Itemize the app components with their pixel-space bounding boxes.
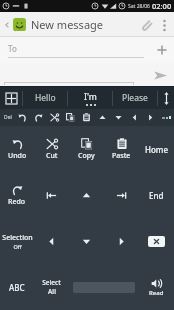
button[interactable]: Undo <box>15 109 30 126</box>
button[interactable]: Undo <box>0 126 34 172</box>
button[interactable]: Resize keyboard <box>158 87 174 109</box>
button[interactable]: End <box>139 172 174 218</box>
button[interactable]: I'm <box>68 87 112 109</box>
button[interactable]: Hello <box>23 87 67 109</box>
button[interactable]: Line start <box>34 172 69 218</box>
staticText: Read <box>149 289 164 297</box>
button[interactable]: Up <box>94 109 110 126</box>
button[interactable]: Please <box>113 87 157 109</box>
staticText: To <box>8 43 17 54</box>
button[interactable]: Send <box>150 65 170 85</box>
staticText: All <box>48 287 56 296</box>
staticText: Please <box>122 92 148 104</box>
button[interactable]: Left <box>126 109 142 126</box>
button[interactable]: Home <box>139 126 174 172</box>
staticText: Off <box>13 243 22 250</box>
button[interactable]: Read aloud <box>139 264 174 310</box>
button[interactable]: Up <box>69 172 104 218</box>
button[interactable]: Navigate up <box>3 14 11 36</box>
staticText: 02:00 <box>152 1 172 11</box>
staticText: Undo <box>8 151 27 161</box>
staticText: Hello <box>35 92 56 104</box>
staticText: Del <box>4 114 12 121</box>
button[interactable]: Paste <box>78 109 94 126</box>
button[interactable]: Space <box>69 264 139 310</box>
button[interactable]: Cut <box>46 109 62 126</box>
staticText: I'm <box>84 91 97 103</box>
button[interactable]: Attach <box>135 13 157 37</box>
button[interactable]: Cut <box>34 126 69 172</box>
button[interactable]: Copy <box>62 109 78 126</box>
button[interactable]: Left <box>34 218 69 264</box>
button[interactable]: Select <box>34 264 69 310</box>
button[interactable]: More options <box>157 13 171 37</box>
button[interactable]: Copy <box>69 126 104 172</box>
staticText: Sat 28/06 <box>128 3 150 10</box>
staticText: Paste <box>112 151 131 161</box>
button[interactable]: Status <box>158 109 174 126</box>
staticText: Copy <box>78 151 95 161</box>
button[interactable]: Down <box>69 218 104 264</box>
button[interactable]: ABC <box>0 264 34 310</box>
staticText: Selection <box>2 233 33 243</box>
button[interactable]: Redo <box>30 109 46 126</box>
button[interactable]: Right <box>142 109 158 126</box>
button[interactable]: Backspace <box>139 218 174 264</box>
button[interactable]: Right <box>104 218 139 264</box>
staticText: ABC <box>9 282 25 293</box>
button[interactable]: Paste <box>104 126 139 172</box>
button[interactable]: Add recipient <box>150 37 174 63</box>
button[interactable]: Selection <box>0 218 34 264</box>
staticText: New message <box>31 17 104 32</box>
staticText: Redo <box>8 197 26 207</box>
button[interactable]: Down <box>110 109 126 126</box>
staticText: End <box>149 190 164 201</box>
button[interactable]: Redo <box>0 172 34 218</box>
staticText: Cut <box>46 151 58 161</box>
staticText: Select <box>42 278 61 287</box>
button[interactable]: Keyboard layouts <box>0 87 22 109</box>
button[interactable]: Line end <box>104 172 139 218</box>
staticText: Home <box>145 144 169 155</box>
button[interactable]: Del <box>0 109 15 126</box>
